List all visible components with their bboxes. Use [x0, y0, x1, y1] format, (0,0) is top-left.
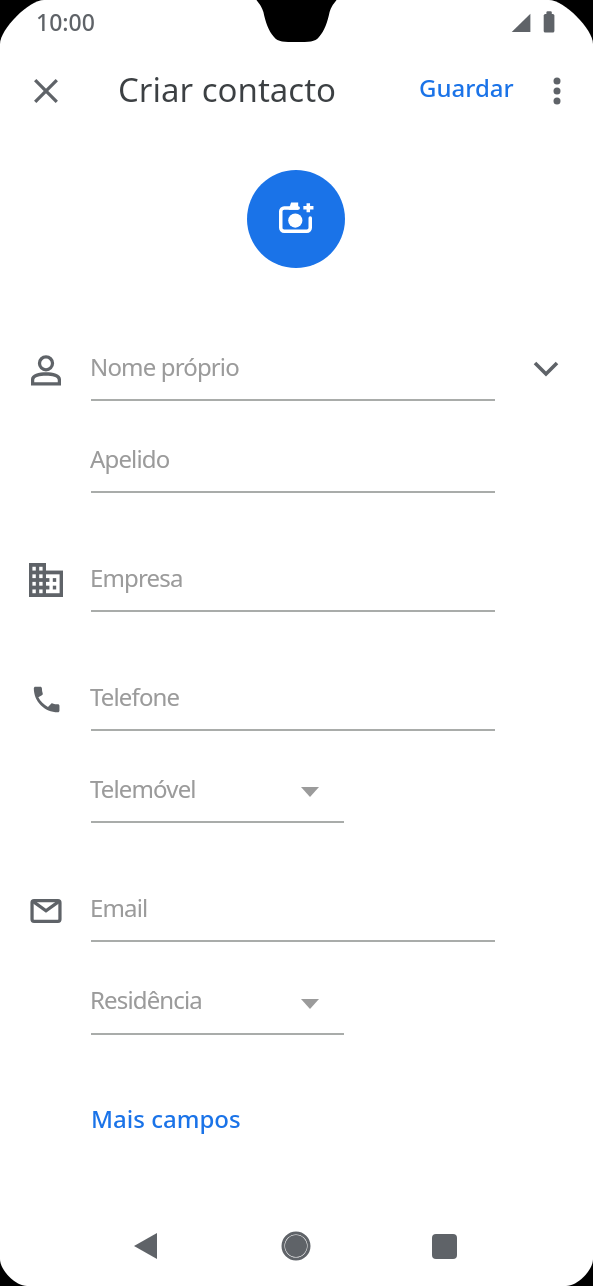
staticText: Apelido [90, 442, 170, 475]
staticText: Mais campos [91, 1102, 241, 1135]
button[interactable]: Escolher tipo [286, 980, 334, 1028]
staticText: Nome próprio [90, 350, 239, 383]
button[interactable]: Guardar [409, 65, 524, 110]
button[interactable]: Mais opções [525, 59, 589, 123]
button[interactable]: Escolher tipo [286, 768, 334, 816]
staticText: 10:00 [36, 6, 95, 37]
staticText: Empresa [90, 561, 183, 594]
button[interactable]: Fechar [14, 59, 78, 123]
staticText: Guardar [419, 71, 514, 104]
staticText: Email [90, 891, 148, 924]
staticText: Criar contacto [118, 67, 337, 112]
staticText: Residência [90, 983, 202, 1016]
button[interactable]: Mais campos [80, 1094, 252, 1143]
staticText: Telefone [90, 680, 180, 713]
button[interactable]: Mostrar mais campos de nome [514, 336, 578, 400]
staticText: Telemóvel [90, 772, 196, 805]
button[interactable]: Adicionar foto [247, 170, 345, 268]
